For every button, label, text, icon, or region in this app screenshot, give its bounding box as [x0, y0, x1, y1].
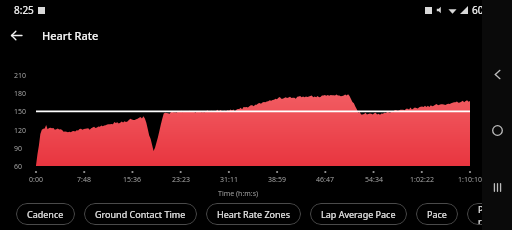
staticText: 8:25 — [14, 3, 34, 17]
staticText: Power (W) — [478, 203, 501, 225]
staticText: 15:36 — [118, 175, 146, 185]
button[interactable]: Back — [0, 20, 32, 50]
staticText: 31:11 — [215, 175, 243, 185]
staticText: 1:02:22 — [408, 175, 436, 185]
staticText: 23:23 — [167, 175, 195, 185]
staticText: 150 — [14, 107, 27, 117]
staticText: Heart Rate — [42, 28, 99, 43]
staticText: Heart Rate Zones — [217, 208, 290, 220]
staticText: 60% — [472, 3, 492, 17]
staticText: Pace — [427, 208, 447, 220]
button[interactable]: Ground Contact Time — [84, 203, 197, 225]
staticText: 210 — [14, 71, 27, 81]
button[interactable]: Back — [484, 61, 510, 87]
staticText: 54:34 — [360, 175, 388, 185]
staticText: 60 — [14, 162, 23, 172]
button[interactable]: Lap Average Pace — [310, 203, 407, 225]
button[interactable]: Heart Rate Zones — [206, 203, 301, 225]
staticText: 46:47 — [311, 175, 339, 185]
staticText: Ground Contact Time — [95, 208, 186, 220]
staticText: 1:10:10 — [456, 175, 484, 185]
staticText: 180 — [14, 89, 27, 99]
staticText: 0:00 — [22, 175, 50, 185]
staticText: 7:48 — [70, 175, 98, 185]
button[interactable]: Pace — [416, 203, 458, 225]
button[interactable]: Cadence — [16, 203, 75, 225]
staticText: 90 — [14, 144, 23, 154]
staticText: Lap Average Pace — [321, 208, 396, 220]
staticText: 38:59 — [263, 175, 291, 185]
staticText: 120 — [14, 126, 27, 136]
button[interactable]: Recent apps — [484, 174, 510, 200]
button[interactable]: Home — [484, 117, 510, 143]
staticText: Cadence — [27, 208, 64, 220]
button[interactable]: Power (W) — [467, 203, 512, 225]
staticText: Time (h:m:s) — [218, 189, 259, 199]
